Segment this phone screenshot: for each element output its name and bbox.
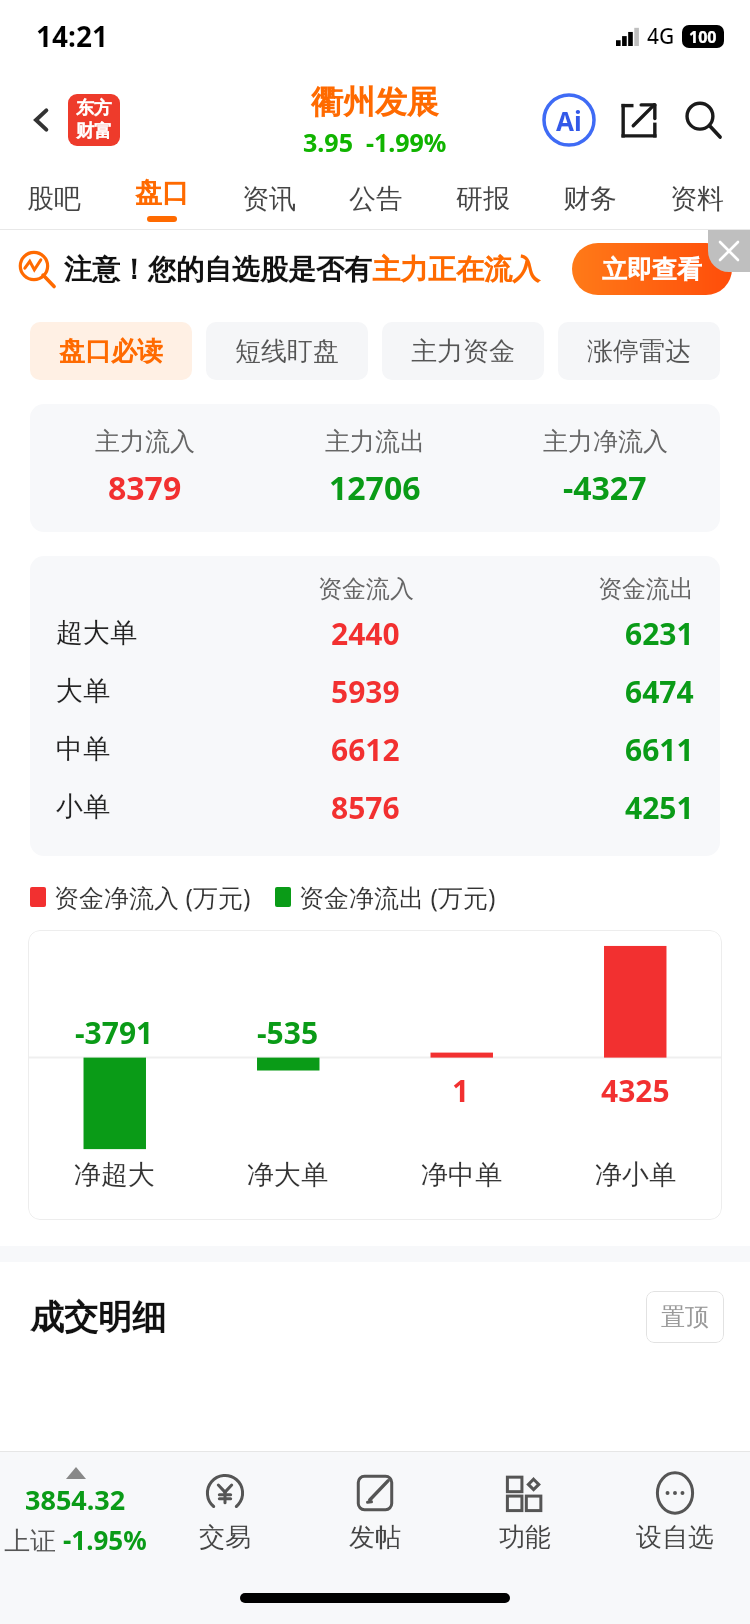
staticText: 财富 (76, 120, 112, 143)
staticText: 净小单 (595, 1158, 676, 1192)
staticText: 4G (647, 22, 675, 51)
staticText: 8576 (331, 787, 400, 828)
button[interactable]: 资料 (643, 168, 750, 230)
button[interactable]: 短线盯盘 (206, 322, 368, 380)
staticText: 盘口 (135, 176, 189, 210)
button[interactable]: 股吧 (0, 168, 108, 230)
staticText: 资料 (670, 182, 724, 216)
staticText: 注意！您的自选股是否有 (64, 252, 372, 287)
staticText: 交易 (199, 1521, 251, 1554)
staticText: 盘口必读 (59, 335, 163, 368)
staticText: 立即查看 (602, 254, 702, 285)
staticText: 净中单 (421, 1158, 502, 1192)
staticText: 发帖 (349, 1521, 401, 1554)
staticText: 主力流出 (325, 426, 425, 457)
staticText: 功能 (499, 1521, 551, 1554)
button[interactable]: Search (676, 93, 730, 147)
staticText: 资金净流入 (万元) (54, 880, 251, 914)
staticText: -4327 (563, 466, 647, 510)
staticText: 3854.32 (25, 1481, 126, 1518)
button[interactable]: Share (612, 93, 666, 147)
button[interactable]: 设自选 (600, 1452, 750, 1572)
staticText: 3.95 -1.99% (303, 125, 447, 159)
staticText: 6474 (625, 671, 694, 712)
button[interactable]: Back (20, 98, 64, 142)
staticText: 涨停雷达 (587, 335, 691, 368)
button[interactable]: 3854.32 (0, 1452, 150, 1572)
staticText: 净大单 (247, 1158, 328, 1192)
staticText: 资金流入 (318, 574, 414, 604)
button[interactable]: 交易 (150, 1452, 300, 1572)
staticText: 主力资金 (411, 335, 515, 368)
staticText: 100 (689, 26, 717, 48)
staticText: 净超大 (74, 1158, 155, 1192)
staticText: 中单 (56, 732, 110, 766)
button[interactable]: 立即查看 (572, 243, 732, 295)
staticText: 14:21 (36, 17, 108, 55)
staticText: 东方 (76, 97, 112, 120)
staticText: 4251 (625, 787, 694, 828)
staticText: -3791 (75, 1012, 154, 1053)
button[interactable]: Close (708, 230, 750, 272)
button[interactable]: AI assistant (540, 91, 598, 149)
button[interactable]: 置顶 (646, 1291, 724, 1343)
staticText: 5939 (331, 671, 400, 712)
staticText: 超大单 (56, 616, 137, 650)
staticText: 2440 (331, 613, 400, 654)
staticText: 上证 (4, 1522, 63, 1558)
staticText: 小单 (56, 790, 110, 824)
staticText: 股吧 (27, 182, 81, 216)
staticText: 6611 (625, 729, 694, 770)
staticText: 成交明细 (30, 1296, 166, 1339)
staticText: 资金净流出 (万元) (299, 880, 496, 914)
staticText: 资讯 (242, 182, 296, 216)
button[interactable]: 发帖 (300, 1452, 450, 1572)
staticText: 4325 (601, 1070, 670, 1111)
button[interactable]: 盘口 (108, 168, 215, 230)
staticText: -535 (257, 1012, 319, 1053)
button[interactable]: 东方财富 (68, 94, 120, 146)
staticText: 主力流入 (95, 426, 195, 457)
staticText: 大单 (56, 674, 110, 708)
staticText: 12706 (329, 466, 421, 510)
staticText: 公告 (349, 182, 403, 216)
staticText: 6612 (331, 729, 400, 770)
staticText: 6231 (625, 613, 694, 654)
staticText: 主力净流入 (543, 426, 668, 457)
staticText: 衢州发展 (311, 82, 439, 122)
staticText: 主力正在流入 (372, 252, 540, 287)
staticText: 8379 (108, 466, 182, 510)
button[interactable]: 公告 (322, 168, 429, 230)
button[interactable]: 财务 (536, 168, 643, 230)
staticText: 资金流出 (598, 574, 694, 604)
staticText: 设自选 (636, 1521, 714, 1554)
staticText: 置顶 (661, 1302, 709, 1332)
staticText: 短线盯盘 (235, 335, 339, 368)
button[interactable]: 涨停雷达 (558, 322, 720, 380)
button[interactable]: 功能 (450, 1452, 600, 1572)
button[interactable]: 主力资金 (382, 322, 544, 380)
staticText: -1.95% (63, 1522, 147, 1557)
staticText: 研报 (456, 182, 510, 216)
staticText: Ai (556, 103, 582, 138)
button[interactable]: 资讯 (215, 168, 322, 230)
button[interactable]: 研报 (429, 168, 536, 230)
staticText: 1 (452, 1070, 470, 1111)
staticText: 财务 (563, 182, 617, 216)
button[interactable]: 盘口必读 (30, 322, 192, 380)
